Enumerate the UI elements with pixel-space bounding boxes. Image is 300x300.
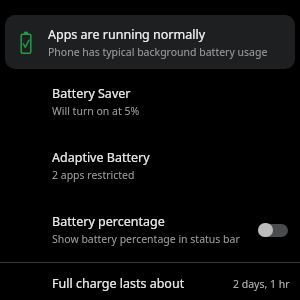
button[interactable]: Battery Saver — [0, 69, 300, 118]
staticText: 2 apps restricted — [52, 168, 135, 182]
staticText: Will turn on at 5% — [52, 104, 140, 118]
button[interactable]: Battery percentage toggle — [254, 217, 292, 243]
staticText: Battery Saver — [52, 85, 131, 102]
staticText: 2 days, 1 hr — [233, 277, 290, 291]
button[interactable]: Full charge lasts about — [0, 263, 300, 292]
staticText: Show battery percentage in status bar — [52, 232, 240, 246]
button[interactable]: Battery healthy — [5, 15, 295, 69]
button[interactable]: Battery percentage — [0, 182, 300, 246]
staticText: Adaptive Battery — [52, 149, 150, 166]
other: Battery healthy — [18, 31, 34, 54]
button[interactable]: Adaptive Battery — [0, 118, 300, 182]
staticText: Phone has typical background battery usa… — [48, 45, 268, 59]
staticText: Apps are running normally — [48, 26, 206, 43]
staticText: Battery percentage — [52, 213, 165, 230]
staticText: Full charge lasts about — [52, 275, 233, 292]
